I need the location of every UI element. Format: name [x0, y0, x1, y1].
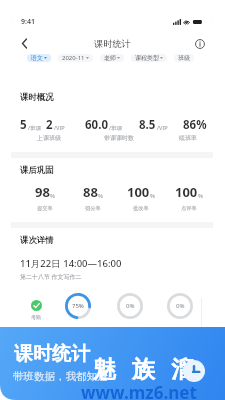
- staticText: 提交率: [37, 205, 53, 212]
- staticText: 9:41: [21, 17, 35, 27]
- staticText: /VIP: [54, 124, 65, 132]
- staticText: 60.0: [85, 117, 108, 133]
- button[interactable]: 班级: [174, 54, 194, 62]
- staticText: 课时统计: [94, 38, 131, 50]
- staticText: 8.5: [139, 117, 156, 133]
- button[interactable]: 0%: [167, 293, 193, 319]
- staticText: 86%: [183, 117, 207, 133]
- staticText: 课时统计: [14, 342, 90, 366]
- staticText: 课后巩固: [20, 165, 54, 176]
- staticText: /班课: [109, 124, 123, 132]
- staticText: 批改率: [133, 205, 149, 212]
- staticText: 班级: [178, 54, 190, 62]
- staticText: 带课课时数: [104, 134, 134, 142]
- staticText: 5: [20, 117, 27, 133]
- staticText: 上课班级: [37, 134, 61, 142]
- staticText: /班课: [28, 124, 42, 132]
- staticText: 语文: [31, 54, 43, 62]
- button[interactable]: 0%: [117, 293, 143, 319]
- staticText: 带班数据，我都知道: [13, 370, 108, 383]
- staticText: 课次详情: [20, 235, 54, 246]
- staticText: %: [98, 192, 103, 200]
- staticText: 2020-11: [62, 54, 85, 62]
- staticText: 98: [35, 183, 50, 201]
- staticText: 11月22日 14:00—16:00: [20, 257, 122, 270]
- staticText: 75%: [72, 302, 84, 310]
- staticText: 2: [46, 117, 53, 133]
- staticText: 100: [127, 183, 150, 201]
- staticText: %: [50, 192, 55, 200]
- button[interactable]: Back: [11, 33, 37, 54]
- staticText: 100: [175, 183, 198, 201]
- staticText: 得分率: [85, 205, 101, 212]
- button[interactable]: 2020-11: [58, 54, 93, 62]
- button[interactable]: 语文: [27, 54, 51, 62]
- button[interactable]: 75%: [65, 293, 91, 319]
- staticText: 点评率: [181, 205, 197, 212]
- staticText: 0%: [126, 302, 135, 310]
- staticText: 课程类型: [135, 54, 159, 62]
- staticText: /VIP: [157, 124, 168, 132]
- button[interactable]: 老师: [100, 54, 124, 62]
- staticText: %: [150, 192, 155, 200]
- button[interactable]: Info: [187, 33, 213, 54]
- staticText: 考勤: [31, 314, 41, 320]
- staticText: 老师: [104, 54, 116, 62]
- staticText: www.mz6.net: [81, 381, 197, 400]
- staticText: 88: [83, 183, 98, 201]
- staticText: 第二十八节 作文写作二: [20, 273, 82, 281]
- staticText: 0%: [176, 302, 185, 310]
- button[interactable]: 课程类型: [131, 54, 167, 62]
- staticText: 续班率: [179, 134, 197, 142]
- staticText: %: [198, 192, 203, 200]
- staticText: 魅 族 溜: [93, 352, 199, 383]
- staticText: 课时概况: [20, 92, 54, 103]
